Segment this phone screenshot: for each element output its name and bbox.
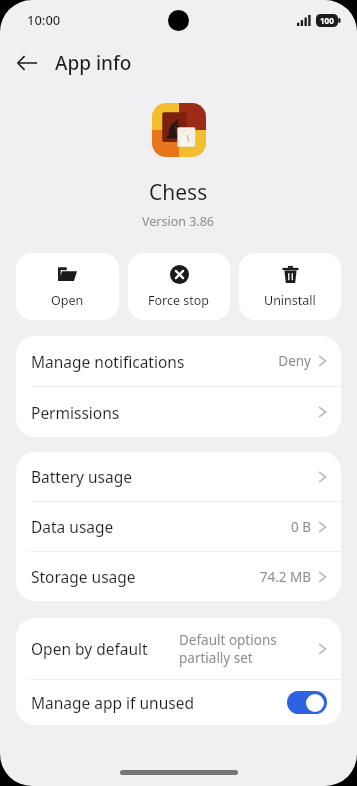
button[interactable]: Force stop: [128, 253, 230, 320]
staticText: Force stop: [148, 292, 210, 309]
staticText: Permissions: [31, 402, 120, 423]
staticText: Deny: [278, 352, 311, 370]
staticText: App info: [55, 50, 132, 76]
button[interactable]: Back: [8, 44, 46, 82]
staticText: 100: [320, 15, 334, 26]
staticText: Chess: [149, 178, 208, 207]
staticText: Default options partially set: [179, 631, 311, 667]
button[interactable]: Permissions: [16, 387, 341, 437]
other: Manage app if unused toggle: [287, 691, 327, 714]
staticText: 0 B: [290, 518, 311, 536]
staticText: 74.2 MB: [259, 568, 311, 586]
staticText: Manage notifications: [31, 351, 185, 372]
staticText: Open by default: [31, 638, 148, 659]
button[interactable]: Open by default: [16, 618, 341, 679]
staticText: Uninstall: [264, 292, 316, 309]
staticText: 10:00: [27, 11, 61, 29]
staticText: Storage usage: [31, 566, 136, 587]
staticText: Manage app if unused: [31, 692, 194, 713]
button[interactable]: Data usage: [16, 502, 341, 551]
staticText: Open: [51, 292, 84, 309]
button[interactable]: Open: [16, 253, 119, 320]
button[interactable]: Storage usage: [16, 552, 341, 601]
button[interactable]: Battery usage: [16, 452, 341, 501]
staticText: Version 3.86: [142, 213, 215, 230]
button[interactable]: Manage notifications: [16, 336, 341, 386]
staticText: Battery usage: [31, 466, 133, 487]
button[interactable]: Uninstall: [239, 253, 341, 320]
button[interactable]: Manage app if unused: [16, 680, 341, 725]
staticText: Data usage: [31, 516, 114, 537]
